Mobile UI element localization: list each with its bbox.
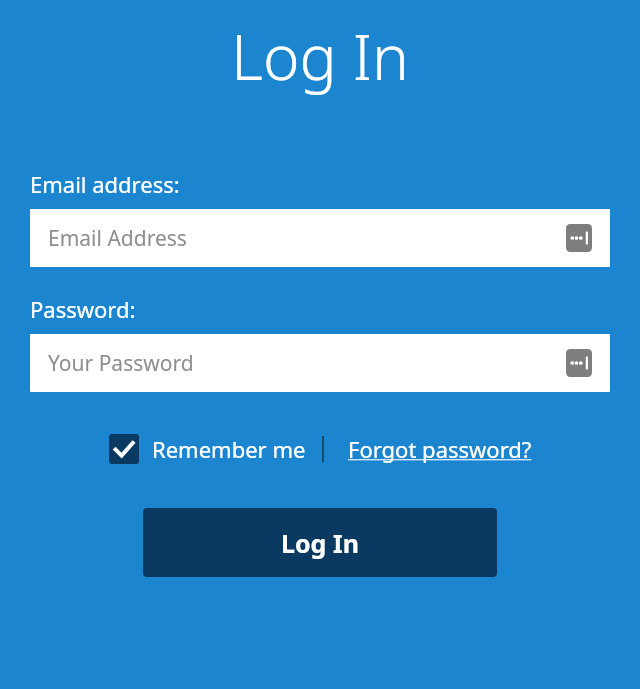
staticText: Password: [30, 294, 136, 324]
staticText: Email address: [30, 169, 180, 199]
button[interactable]: Log In [143, 508, 497, 577]
button[interactable]: Forgot password? [348, 434, 532, 464]
button[interactable]: Email Address [30, 209, 610, 267]
staticText: Email Address [48, 224, 187, 253]
button[interactable]: Your Password [30, 334, 610, 392]
button[interactable]: Autofill email address [566, 224, 592, 252]
staticText: Log In [0, 14, 640, 98]
staticText: Forgot password? [348, 434, 532, 464]
staticText: Log In [281, 526, 359, 560]
staticText: Remember me [152, 434, 306, 464]
button[interactable]: Remember me [109, 434, 306, 464]
button[interactable]: Autofill password [566, 349, 592, 377]
staticText: Your Password [48, 349, 194, 378]
